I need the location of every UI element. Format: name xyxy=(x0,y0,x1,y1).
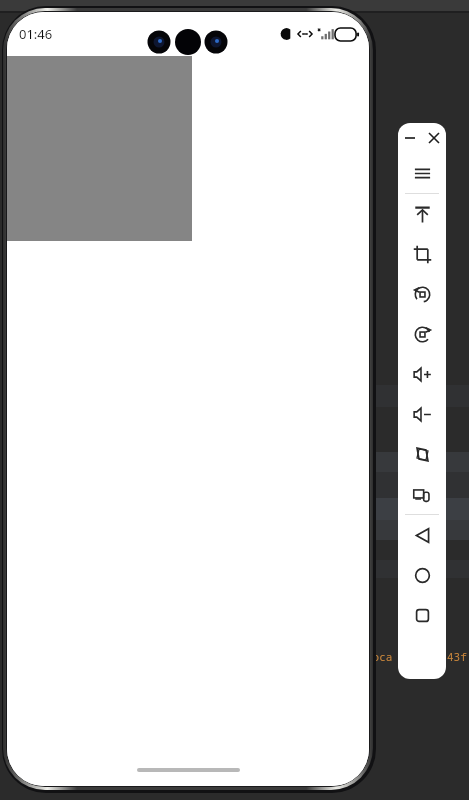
button[interactable]: Menu xyxy=(398,153,446,193)
button[interactable]: Orientation xyxy=(398,434,446,474)
button[interactable]: Crop xyxy=(398,234,446,274)
staticText: 01:46 xyxy=(19,25,53,43)
button[interactable]: Volume up xyxy=(398,354,446,394)
button[interactable]: Fold xyxy=(398,474,446,514)
staticText: .oca xyxy=(366,649,393,664)
button[interactable]: Back xyxy=(398,515,446,555)
button[interactable]: Volume down xyxy=(398,394,446,434)
staticText: 43f xyxy=(447,649,467,664)
button[interactable]: Close xyxy=(422,123,446,153)
button[interactable]: Rotate right xyxy=(398,314,446,354)
button[interactable]: Minimize xyxy=(398,123,422,153)
button[interactable]: Recents xyxy=(398,595,446,635)
button[interactable]: Home xyxy=(398,555,446,595)
button[interactable]: Screenshot xyxy=(398,194,446,234)
button[interactable]: Rotate left xyxy=(398,274,446,314)
